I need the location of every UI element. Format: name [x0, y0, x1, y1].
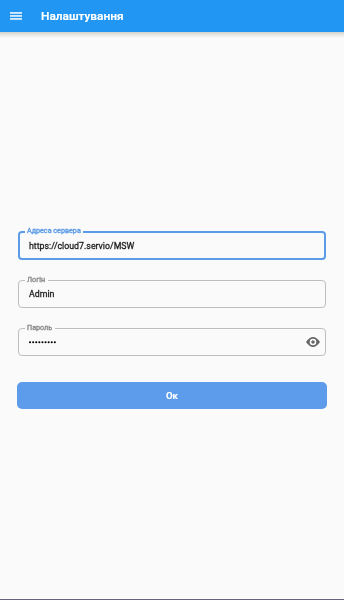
staticText: Пароль: [27, 323, 53, 331]
staticText: Admin: [29, 289, 55, 299]
button[interactable]: [18, 280, 326, 308]
button[interactable]: Toggle password visibility: [303, 332, 323, 352]
button[interactable]: [18, 231, 326, 260]
staticText: Логін: [27, 275, 46, 283]
staticText: Логін: [27, 275, 46, 283]
staticText: https://cloud7.servio/MSW: [29, 241, 135, 251]
button[interactable]: Ок: [17, 382, 327, 409]
staticText: Адреса сервера: [27, 226, 81, 234]
staticText: Адреса сервера: [27, 226, 81, 234]
button[interactable]: Menu: [0, 0, 32, 32]
staticText: Admin: [29, 289, 55, 299]
staticText: Налаштування: [41, 9, 124, 23]
staticText: Пароль: [27, 323, 53, 331]
staticText: https://cloud7.servio/MSW: [29, 241, 135, 251]
button[interactable]: [18, 328, 326, 356]
staticText: Ок: [166, 390, 178, 401]
